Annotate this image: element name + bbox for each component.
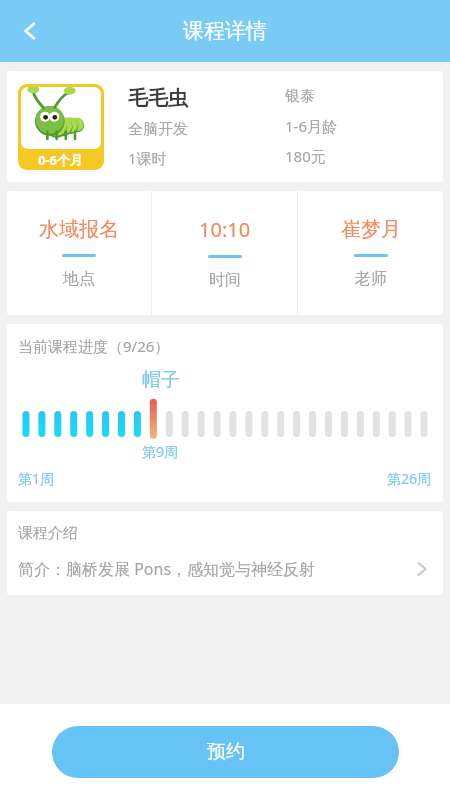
staticText: 地点: [63, 269, 95, 289]
staticText: 1-6月龄: [285, 116, 337, 136]
staticText: 时间: [209, 270, 241, 290]
staticText: 当前课程进度（9/26）: [18, 336, 170, 356]
staticText: 全脑开发: [128, 120, 188, 139]
staticText: 老师: [355, 269, 387, 289]
staticText: 帽子: [142, 368, 180, 392]
staticText: 10:10: [199, 216, 251, 243]
staticText: 1课时: [128, 148, 167, 168]
button[interactable]: 10:10: [152, 191, 297, 315]
button[interactable]: 预约: [52, 726, 399, 778]
staticText: 简介：脑桥发展 Pons，感知觉与神经反射: [18, 558, 412, 580]
staticText: 第26周: [387, 469, 432, 488]
staticText: 银泰: [285, 87, 315, 106]
staticText: 水域报名: [39, 217, 119, 242]
staticText: 第9周: [142, 442, 179, 461]
staticText: 0-6个月: [38, 151, 84, 169]
staticText: 课程介绍: [18, 524, 78, 543]
staticText: 课程详情: [183, 18, 267, 44]
staticText: 预约: [207, 740, 245, 764]
staticText: 崔梦月: [341, 217, 401, 242]
staticText: 毛毛虫: [128, 86, 188, 111]
button[interactable]: 水域报名: [7, 191, 151, 315]
button[interactable]: Back: [6, 7, 54, 55]
staticText: 第1周: [18, 469, 55, 488]
button[interactable]: 崔梦月: [298, 191, 443, 315]
staticText: 180元: [285, 146, 326, 166]
button[interactable]: 简介：脑桥发展 Pons，感知觉与神经反射: [7, 543, 443, 595]
